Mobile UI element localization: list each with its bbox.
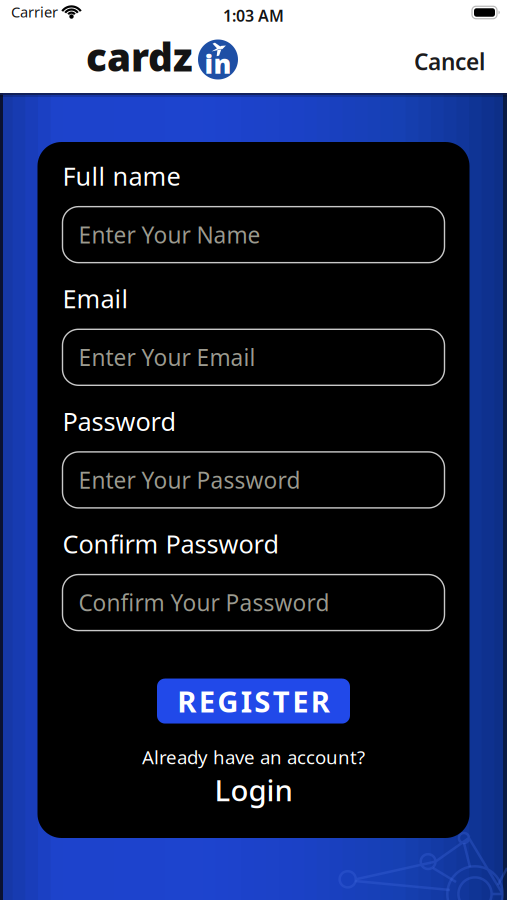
staticText: Confirm Your Password	[78, 587, 329, 618]
staticText: Enter Your Email	[78, 342, 255, 372]
staticText: Enter Your Password	[78, 465, 300, 495]
staticText: Full name	[62, 159, 180, 193]
button[interactable]: Cancel	[414, 46, 507, 76]
textField[interactable]: Enter Your Password	[78, 465, 444, 495]
staticText: in	[204, 46, 231, 81]
staticText: Already have an account?	[142, 745, 365, 769]
staticText: cardz	[86, 31, 193, 82]
staticText: Confirm Password	[62, 527, 279, 560]
button[interactable]: Login	[214, 770, 292, 809]
textField[interactable]: Confirm Your Password	[78, 587, 444, 618]
staticText: Email	[62, 282, 128, 315]
staticText: Cancel	[414, 46, 485, 76]
staticText: 1:03 AM	[223, 5, 284, 26]
button[interactable]: REGISTER	[157, 679, 350, 724]
staticText: Login	[214, 770, 292, 809]
staticText: Password	[62, 404, 176, 438]
textField[interactable]: Enter Your Name	[78, 220, 444, 250]
staticText: Enter Your Name	[78, 220, 260, 250]
staticText: Carrier	[11, 2, 58, 21]
staticText: REGISTER	[177, 682, 330, 721]
textField[interactable]: Enter Your Email	[78, 342, 444, 372]
